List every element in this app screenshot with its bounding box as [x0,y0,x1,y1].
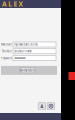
staticText: my-mandant-demo [14,43,38,46]
staticText: Struktur [2,49,12,53]
staticText: xxxxxxxxxxx [14,56,25,60]
staticText: Mandant [1,43,12,46]
button[interactable]: A [0,0,23,8]
staticText: E [13,0,17,8]
staticText: X [19,0,23,8]
staticText: struktur-name [14,49,32,53]
staticText: Passwort [1,56,12,60]
staticText: Anmelden [20,69,35,72]
staticText: A [2,0,7,8]
button[interactable]: Anmelden [20,68,35,73]
button[interactable]: Language [47,103,55,110]
staticText: L [8,0,12,8]
button[interactable]: Account [38,103,46,110]
